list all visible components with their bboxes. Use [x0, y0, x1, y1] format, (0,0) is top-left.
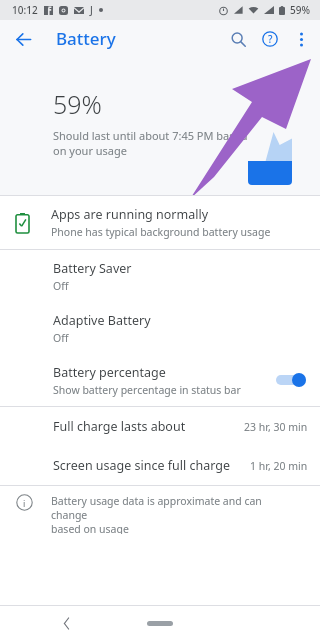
- button[interactable]: Back: [53, 610, 79, 636]
- staticText: Phone has typical background battery usa…: [51, 225, 271, 239]
- staticText: Off: [53, 279, 69, 293]
- button[interactable]: Full charge lasts about: [0, 407, 320, 446]
- button[interactable]: Search: [222, 23, 254, 55]
- staticText: 59%: [53, 87, 102, 121]
- staticText: 23 hr, 30 min: [244, 420, 308, 434]
- staticText: 59%: [290, 3, 310, 17]
- staticText: i: [23, 497, 26, 509]
- staticText: Adaptive Battery: [53, 312, 151, 329]
- staticText: Battery usage data is approximate and ca…: [51, 494, 300, 534]
- staticText: Full charge lasts about: [53, 418, 244, 435]
- button[interactable]: Apps are running normally: [0, 196, 320, 249]
- button[interactable]: Battery Saver: [0, 250, 320, 302]
- staticText: Show battery percentage in status bar: [53, 383, 241, 397]
- staticText: 1 hr, 20 min: [250, 459, 308, 473]
- button[interactable]: Help: [254, 23, 286, 55]
- staticText: Should last until about 7:45 PM based on…: [53, 128, 248, 158]
- button[interactable]: Back: [8, 24, 38, 54]
- button[interactable]: Home: [147, 621, 173, 626]
- button[interactable]: Adaptive Battery: [0, 302, 320, 354]
- staticText: Apps are running normally: [51, 206, 209, 223]
- staticText: Battery Saver: [53, 260, 132, 277]
- staticText: ?: [268, 32, 273, 46]
- staticText: Off: [53, 331, 69, 345]
- staticText: Battery percentage: [53, 364, 166, 381]
- staticText: J: [90, 3, 93, 17]
- button[interactable]: Screen usage since full charge: [0, 446, 320, 485]
- staticText: 10:12: [12, 3, 38, 17]
- button[interactable]: Battery percentage: [0, 354, 320, 406]
- button[interactable]: More options: [286, 24, 316, 54]
- staticText: Screen usage since full charge: [53, 457, 250, 474]
- staticText: Battery: [56, 27, 116, 50]
